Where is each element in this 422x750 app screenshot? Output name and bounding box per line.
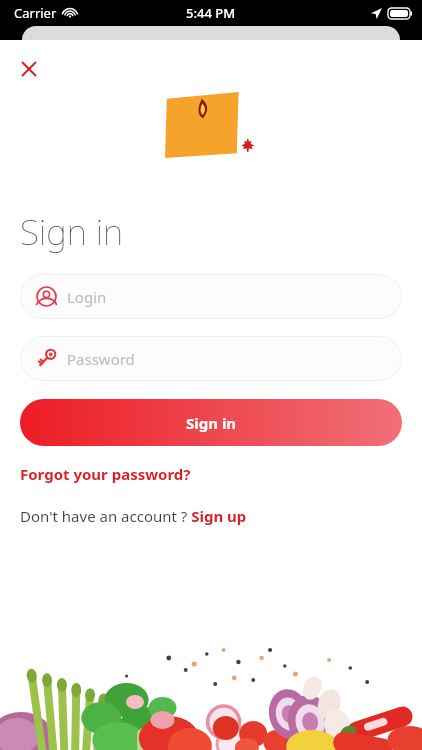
- button[interactable]: Sign in: [20, 399, 402, 446]
- button[interactable]: Forgot your password?: [20, 464, 191, 484]
- staticText: Sign in: [20, 208, 124, 256]
- staticText: 5:44 PM: [186, 4, 236, 22]
- staticText: Sign in: [186, 413, 237, 433]
- staticText: Carrier: [14, 4, 57, 22]
- button[interactable]: Don't have an account ? Sign up: [20, 506, 247, 526]
- staticText: Forgot your password?: [20, 464, 191, 484]
- staticText: Login: [67, 287, 107, 307]
- staticText: Don't have an account ? Sign up: [20, 506, 247, 526]
- button[interactable]: Password: [20, 336, 402, 381]
- button[interactable]: Close: [12, 52, 46, 86]
- button[interactable]: Login: [20, 274, 402, 319]
- staticText: Password: [67, 349, 135, 369]
